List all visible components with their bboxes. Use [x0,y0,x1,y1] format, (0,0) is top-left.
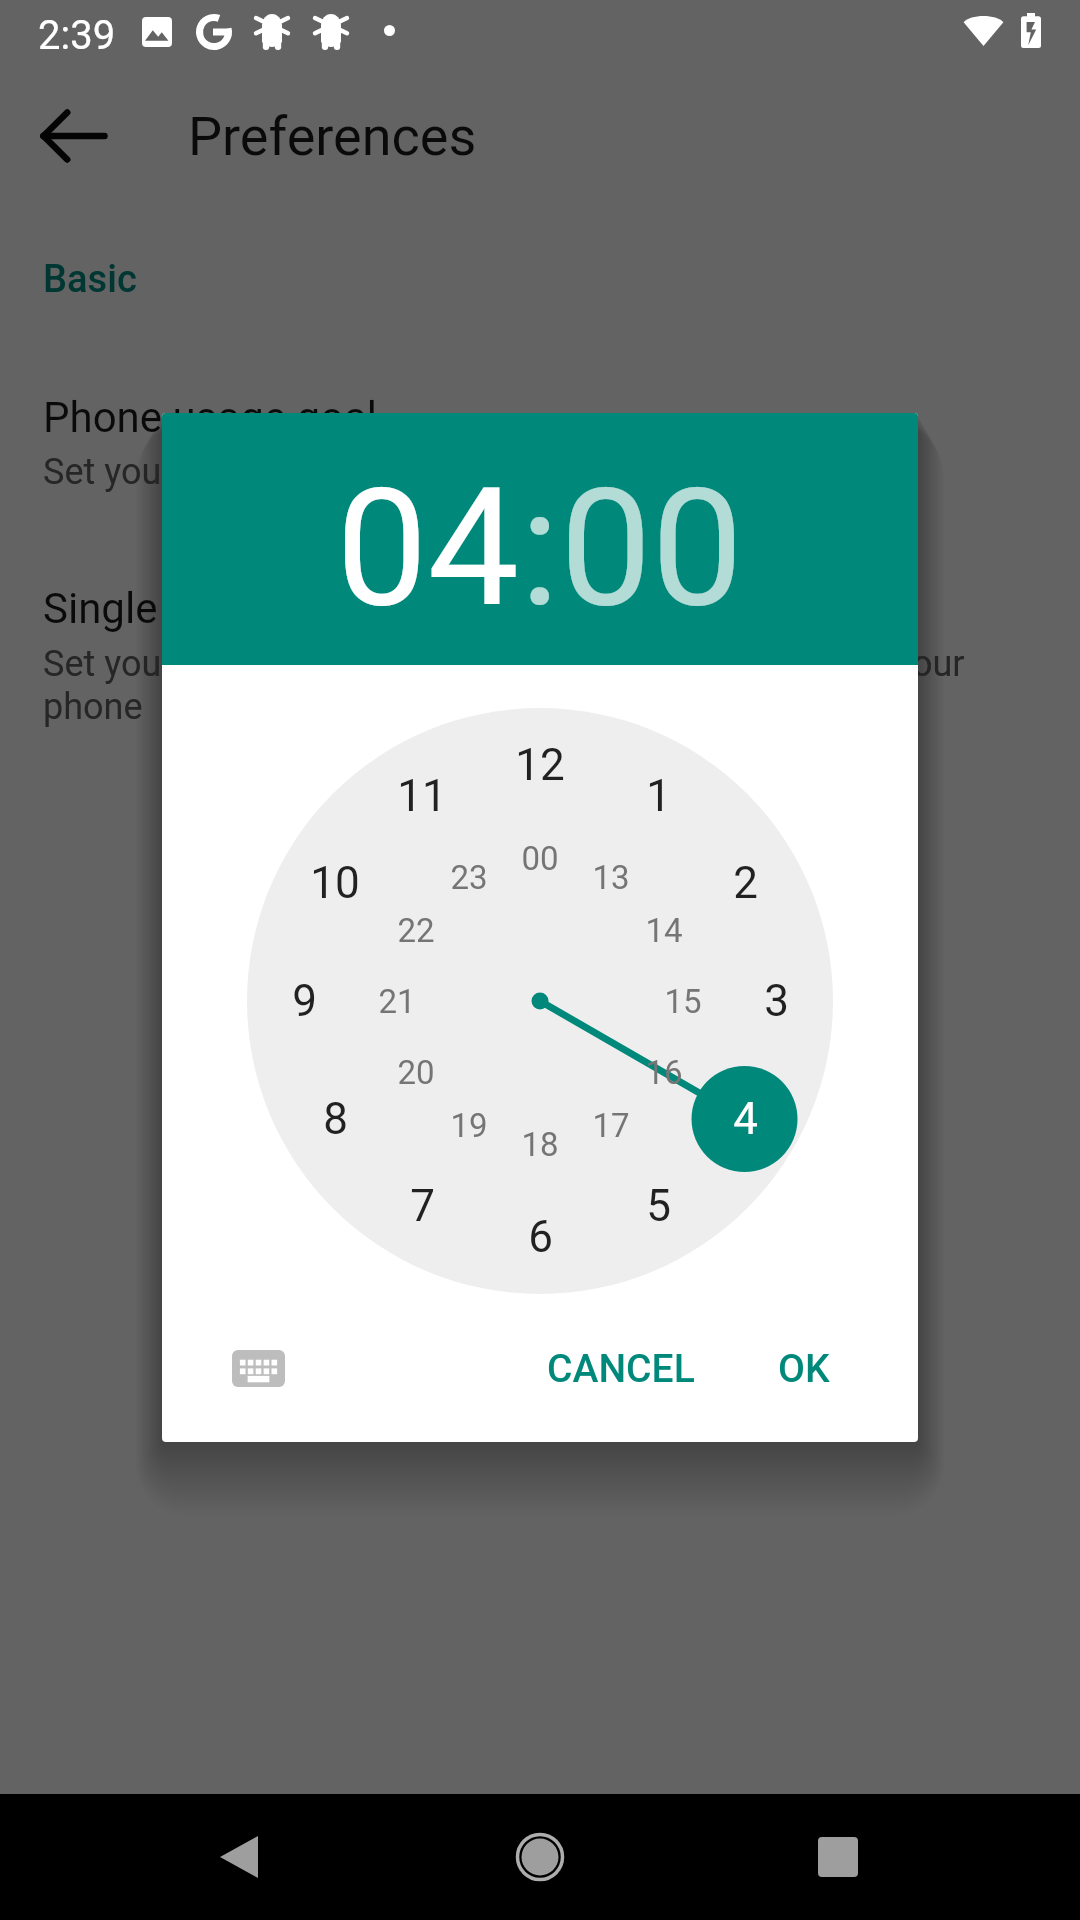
button[interactable]: Back [176,1794,302,1920]
button[interactable]: 04 [336,453,520,644]
staticText: 21 [378,982,416,1021]
button[interactable]: 13 [575,841,647,913]
staticText: 8 [323,1093,348,1145]
button[interactable]: 23 [433,841,505,913]
staticText: 2:39 [38,12,116,59]
staticText: : [520,453,560,644]
staticText: Single use goal [43,584,326,633]
button[interactable]: 4 [697,1071,793,1167]
staticText: 14 [645,911,683,950]
button[interactable]: 6 [492,1189,588,1285]
staticText: 20 [397,1053,435,1092]
staticText: 23 [450,858,488,897]
staticText: Set your daily phone usage goal [43,451,550,493]
button[interactable]: 17 [575,1089,647,1161]
button[interactable]: 8 [287,1071,383,1167]
button[interactable]: 21 [361,965,433,1037]
staticText: 15 [664,982,702,1021]
button[interactable]: OK [732,1321,876,1417]
button[interactable]: Switch to text input mode [210,1320,306,1416]
staticText: OK [778,1346,830,1392]
button[interactable]: 14 [628,894,700,966]
button[interactable]: 19 [433,1089,505,1161]
button[interactable]: Recent apps [775,1794,901,1920]
staticText: 10 [310,857,360,909]
staticText: 17 [592,1106,630,1145]
button[interactable]: Navigate up [26,88,122,184]
staticText: 5 [646,1180,671,1232]
staticText: 18 [521,1125,559,1164]
staticText: 22 [397,911,435,950]
staticText: Basic [43,257,137,302]
button[interactable]: 7 [374,1158,470,1254]
button[interactable]: 15 [647,965,719,1037]
staticText: Phone usage goal [43,393,378,442]
button[interactable]: Single use goal [0,552,1080,772]
staticText: Preferences [188,105,477,168]
staticText: 19 [450,1106,488,1145]
staticText: 13 [592,858,630,897]
button[interactable]: 10 [287,835,383,931]
button[interactable]: 18 [504,1108,576,1180]
staticText: CANCEL [547,1346,695,1392]
staticText: 1 [646,770,671,822]
staticText: 7 [410,1180,435,1232]
button[interactable]: 11 [374,748,470,844]
staticText: 00 [521,839,559,878]
button[interactable]: 00 [560,453,744,644]
button[interactable]: 00 [504,822,576,894]
staticText: 6 [528,1211,553,1263]
button[interactable]: 1 [610,748,706,844]
staticText: 9 [292,975,317,1027]
button[interactable]: 2 [697,835,793,931]
button[interactable]: 5 [610,1158,706,1254]
button[interactable]: CANCEL [526,1321,716,1417]
staticText: 2 [733,857,758,909]
button[interactable]: 9 [256,953,352,1049]
button[interactable]: 22 [380,894,452,966]
button[interactable]: Home [477,1794,603,1920]
staticText: Set your goal for a single continuous pe… [43,643,965,685]
staticText: phone [43,686,143,728]
staticText: 16 [645,1053,683,1092]
button[interactable]: 3 [728,953,824,1049]
button[interactable]: 20 [380,1036,452,1108]
staticText: 12 [515,739,565,791]
staticText: 11 [397,770,447,822]
staticText: 4 [733,1093,758,1145]
button[interactable]: 12 [492,717,588,813]
button[interactable]: 16 [628,1036,700,1108]
button[interactable]: Phone usage goal [0,360,1080,530]
staticText: 3 [764,975,789,1027]
